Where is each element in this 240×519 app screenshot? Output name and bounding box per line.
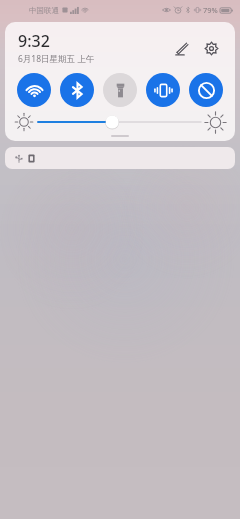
button[interactable]: Settings (199, 36, 223, 60)
staticText: 中国联通 (29, 6, 59, 15)
button[interactable]: Do not disturb (189, 73, 223, 107)
button[interactable] (5, 147, 235, 169)
button[interactable]: Bluetooth (60, 73, 94, 107)
button[interactable]: Wi-Fi (17, 73, 51, 107)
button[interactable]: Brightness (38, 114, 201, 130)
staticText: 9:32 (18, 30, 50, 52)
button[interactable]: Flashlight (103, 73, 137, 107)
button[interactable]: Edit (169, 36, 193, 60)
button[interactable]: Vibrate (146, 73, 180, 107)
staticText: 79% (203, 5, 218, 15)
staticText: 6月18日星期五 上午 (18, 53, 95, 65)
